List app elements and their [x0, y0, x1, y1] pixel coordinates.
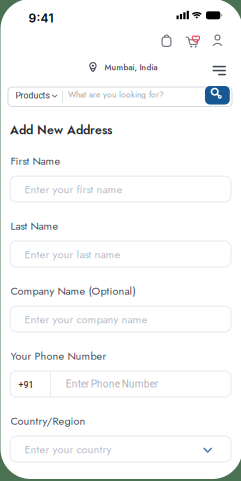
button[interactable]: Enter your country — [9, 435, 231, 462]
button[interactable]: Products — [15, 91, 59, 104]
staticText: Enter your first name — [24, 181, 122, 197]
button[interactable]: Enter your last name — [9, 240, 231, 267]
staticText: Country/Region — [10, 413, 85, 429]
button[interactable] — [212, 62, 226, 71]
staticText: Enter your company name — [24, 311, 147, 327]
staticText: Enter Phone Number — [66, 378, 158, 390]
staticText: Last Name — [10, 218, 58, 234]
button[interactable]: Mumbai, India — [88, 61, 158, 74]
staticText: Mumbai, India — [104, 61, 157, 73]
button[interactable] — [0, 0, 19, 22]
staticText: Add New Address — [10, 121, 112, 139]
staticText: 9:41 — [28, 11, 53, 25]
staticText: Products — [15, 91, 49, 101]
staticText: What are you looking for? — [68, 88, 164, 101]
staticText: Your Phone Number — [10, 348, 106, 364]
button[interactable]: What are you looking for? — [7, 86, 232, 107]
button[interactable] — [205, 86, 230, 104]
button[interactable] — [0, 0, 19, 22]
staticText: First Name — [10, 153, 60, 169]
button[interactable] — [9, 370, 231, 397]
button[interactable]: Enter your company name — [9, 305, 231, 332]
staticText: +91 — [18, 380, 33, 390]
staticText: Company Name (Optional) — [10, 283, 135, 299]
staticText: Enter your country — [24, 441, 111, 457]
staticText: Enter your last name — [24, 246, 120, 262]
button[interactable]: Enter your first name — [9, 175, 231, 202]
button[interactable] — [0, 0, 19, 22]
